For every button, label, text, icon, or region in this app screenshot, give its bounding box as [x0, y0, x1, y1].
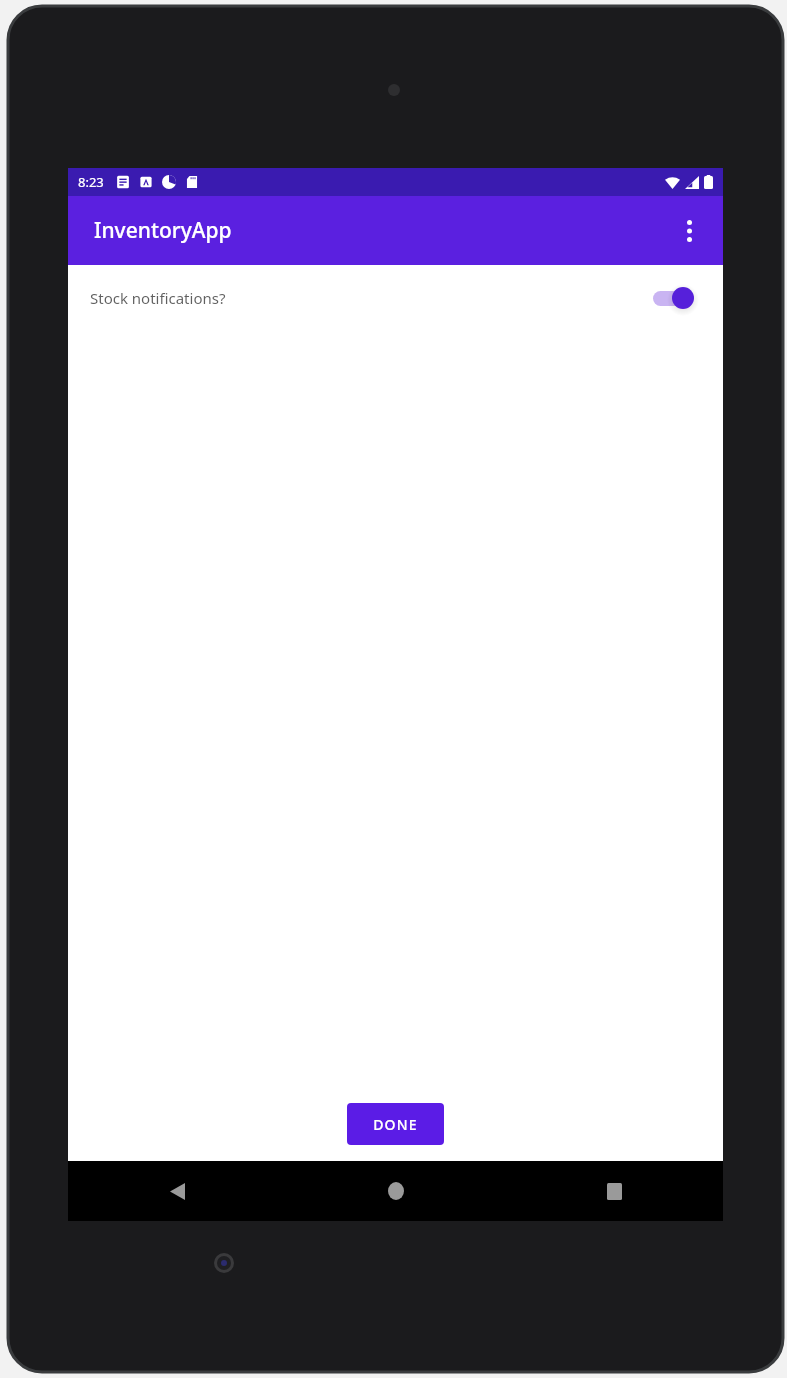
staticText: Stock notifications? — [90, 288, 226, 308]
staticText: 8:23 — [78, 173, 104, 191]
staticText: DONE — [373, 1115, 418, 1134]
button[interactable]: Back — [68, 1161, 287, 1221]
button[interactable]: Stock notifications toggle — [649, 282, 701, 314]
button[interactable]: DONE — [347, 1103, 444, 1145]
button[interactable]: Stock notifications? — [68, 265, 723, 331]
button[interactable]: More options — [665, 207, 713, 255]
staticText: InventoryApp — [94, 216, 232, 245]
button[interactable]: Home — [287, 1161, 505, 1221]
button[interactable]: Recent apps — [505, 1161, 723, 1221]
